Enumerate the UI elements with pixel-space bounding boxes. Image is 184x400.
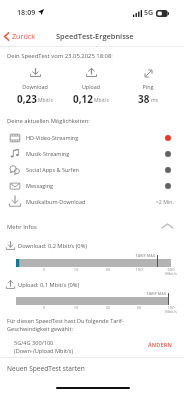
button[interactable]	[0, 218, 184, 237]
staticText: SpeedTest-Ergebnisse	[56, 31, 134, 41]
staticText: Download: 0,2 Mbit/s (0%)	[18, 242, 184, 250]
staticText: Dein SpeedTest vom 23.05.2025 18:08:	[7, 52, 184, 60]
staticText: 0,23	[17, 92, 37, 105]
staticText: Messaging	[26, 182, 184, 189]
staticText: ms	[151, 97, 159, 104]
staticText: TARIF MAX	[126, 291, 166, 296]
staticText: 18:09	[17, 7, 36, 17]
staticText: 10	[56, 305, 96, 310]
staticText: >2 Min.	[140, 198, 174, 205]
button[interactable]	[0, 193, 184, 209]
staticText: Deine aktuellen Möglichkeiten:	[7, 117, 184, 125]
staticText: 50	[119, 305, 159, 310]
button[interactable]: Neuen SpeedTest starten	[0, 361, 184, 376]
staticText: 5	[24, 267, 64, 272]
staticText: ÄNDERN	[148, 341, 172, 349]
staticText: Mehr Infos	[7, 223, 184, 231]
staticText: Mbit/s	[151, 271, 184, 276]
button[interactable]	[0, 130, 184, 146]
staticText: 38	[138, 92, 150, 105]
staticText: 10	[56, 267, 96, 272]
staticText: Für diesen SpeedTest hast Du folgende Ta…	[7, 317, 135, 333]
button[interactable]: ÄNDERN	[144, 338, 176, 352]
staticText: Ping	[118, 83, 178, 90]
staticText: Mbit/s	[38, 97, 53, 104]
staticText: Musikalbum-Download	[26, 198, 184, 205]
staticText: 100	[119, 267, 159, 272]
staticText: 0,12	[73, 92, 93, 105]
button[interactable]: Zurück	[2, 29, 39, 43]
staticText: HD-Video-Streaming	[26, 134, 184, 141]
staticText: Upload	[61, 83, 121, 90]
staticText: 5G/4G 300/100 (Down-/Upload Mbit/s)	[14, 339, 74, 355]
staticText: 5G	[144, 8, 154, 18]
button[interactable]	[0, 162, 184, 178]
staticText: 50	[88, 267, 128, 272]
staticText: Social Apps & Surfen	[26, 166, 184, 173]
staticText: Neuen SpeedTest starten	[7, 364, 85, 373]
staticText: Download	[5, 83, 65, 90]
staticText: Upload: 0,1 Mbit/s (0%)	[18, 281, 184, 289]
staticText: Zurück	[12, 31, 36, 41]
staticText: 500	[151, 267, 184, 272]
staticText: Mbit/s	[151, 309, 184, 314]
staticText: TARIF MAX	[115, 253, 155, 258]
button[interactable]	[0, 146, 184, 162]
other: Einklappen	[162, 223, 173, 229]
staticText: Musik-Streaming	[26, 150, 184, 157]
staticText: 25	[88, 305, 128, 310]
staticText: 5	[24, 305, 64, 310]
staticText: 100	[151, 305, 184, 310]
staticText: Mbit/s	[94, 97, 109, 104]
button[interactable]	[0, 178, 184, 194]
